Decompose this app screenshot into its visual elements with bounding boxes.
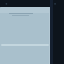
other: Status bar	[0, 0, 64, 7]
button[interactable]: Action bar	[0, 7, 50, 64]
